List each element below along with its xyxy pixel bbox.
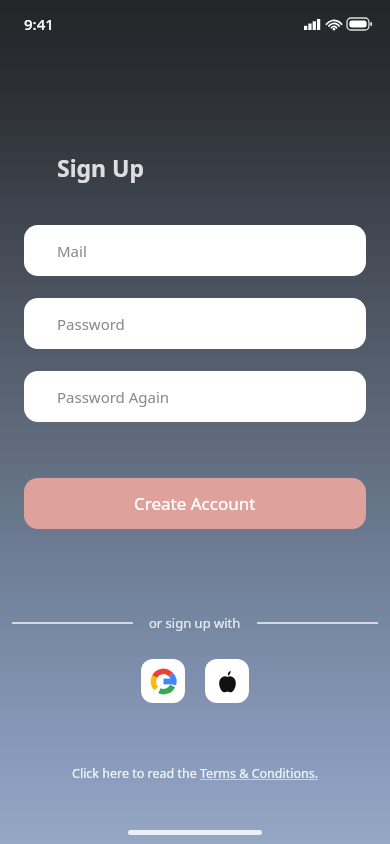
button[interactable]: Mail xyxy=(24,225,366,276)
staticText: Password xyxy=(57,314,125,334)
button[interactable]: Password xyxy=(24,298,366,349)
staticText: 9:41 xyxy=(24,14,54,34)
staticText: Password Again xyxy=(57,387,170,407)
button[interactable]: Sign up with Google xyxy=(141,659,185,703)
staticText: Create Account xyxy=(134,492,256,515)
button[interactable]: Click here to read the Terms & Condition… xyxy=(0,765,390,782)
staticText: or sign up with xyxy=(149,614,241,632)
button[interactable]: Password Again xyxy=(24,371,366,422)
staticText: Mail xyxy=(57,241,87,261)
staticText: Click here to read the Terms & Condition… xyxy=(72,765,319,782)
button[interactable]: Create Account xyxy=(24,478,366,529)
button[interactable]: Sign up with Apple xyxy=(205,659,249,703)
staticText: Sign Up xyxy=(57,152,144,183)
